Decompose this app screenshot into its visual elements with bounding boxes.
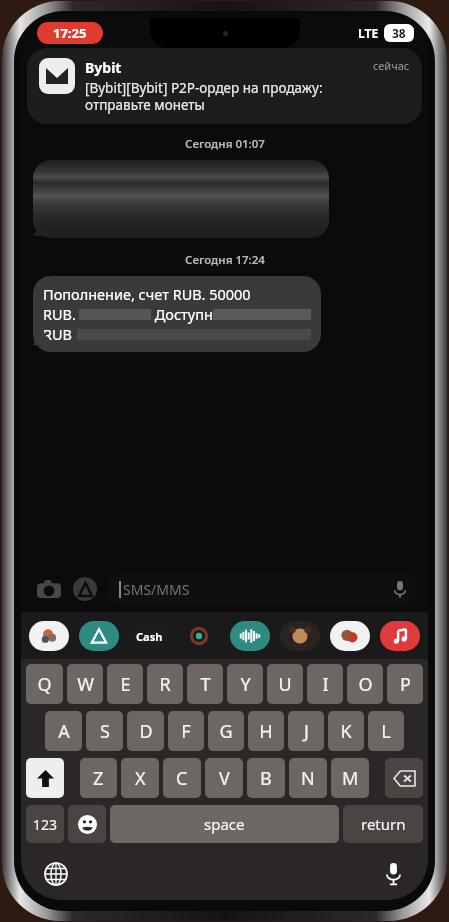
staticText: Cash	[136, 629, 163, 644]
staticText: N	[301, 766, 315, 791]
button[interactable]: App 7	[378, 619, 422, 653]
staticText: Доступн	[151, 304, 213, 324]
button[interactable]: Bybit	[27, 48, 422, 124]
staticText: R	[159, 672, 171, 697]
button[interactable]: J	[288, 711, 324, 751]
staticText: Q	[37, 672, 52, 697]
staticText: T	[200, 672, 211, 697]
button[interactable]: Backspace	[385, 758, 423, 798]
staticText: E	[120, 672, 131, 697]
button[interactable]: Y	[227, 664, 263, 704]
button[interactable]: O	[347, 664, 383, 704]
button[interactable]: A	[45, 711, 82, 751]
button[interactable]: U	[267, 664, 303, 704]
button[interactable]: App 3	[177, 619, 221, 653]
button[interactable]: R	[147, 664, 183, 704]
button[interactable]: Q	[26, 664, 63, 704]
staticText: Y	[240, 672, 251, 697]
staticText: X	[135, 766, 146, 791]
button[interactable]: T	[187, 664, 223, 704]
staticText: 123	[33, 815, 58, 834]
button[interactable]: S	[86, 711, 123, 751]
staticText: O	[358, 672, 373, 697]
staticText: return	[361, 814, 406, 834]
staticText: M	[342, 766, 359, 791]
button[interactable]: H	[248, 711, 284, 751]
button[interactable]: D	[127, 711, 164, 751]
button[interactable]: Пополнение, счет RUB. 50000	[33, 276, 321, 352]
button[interactable]: return	[343, 805, 423, 843]
button[interactable]: Shift	[26, 758, 64, 798]
staticText: Z	[93, 766, 104, 791]
button[interactable]: K	[328, 711, 364, 751]
staticText: LTE	[358, 25, 379, 41]
staticText: S	[100, 719, 110, 744]
button[interactable]	[33, 160, 329, 238]
button[interactable]: I	[307, 664, 343, 704]
staticText: Сегодня 17:24	[185, 252, 265, 268]
button[interactable]: App 1	[77, 619, 121, 653]
staticText: J	[304, 719, 309, 744]
button[interactable]: App 2	[127, 619, 171, 653]
staticText: 38	[392, 25, 406, 41]
staticText: I	[322, 672, 329, 697]
staticText: B	[260, 766, 272, 791]
staticText: A	[58, 719, 70, 744]
button[interactable]: W	[67, 664, 103, 704]
button[interactable]: Camera	[31, 571, 67, 607]
staticText: H	[259, 719, 273, 744]
button[interactable]: F	[168, 711, 204, 751]
button[interactable]: X	[121, 758, 159, 798]
staticText: C	[176, 766, 188, 791]
staticText: RUB.	[43, 304, 76, 324]
button[interactable]: App Store apps	[67, 571, 103, 607]
button[interactable]: N	[289, 758, 327, 798]
button[interactable]: Emoji	[68, 805, 106, 843]
button[interactable]: B	[247, 758, 285, 798]
button[interactable]: E	[107, 664, 143, 704]
staticText: L	[381, 719, 391, 744]
staticText: K	[340, 719, 352, 744]
button[interactable]: G	[208, 711, 244, 751]
button[interactable]: SMS/MMS	[107, 572, 418, 606]
button[interactable]: App 0	[27, 619, 71, 653]
button[interactable]: space	[110, 805, 339, 843]
button[interactable]: App 4	[228, 619, 272, 653]
button[interactable]: C	[163, 758, 201, 798]
staticText: D	[139, 719, 153, 744]
staticText: G	[219, 719, 233, 744]
button[interactable]: Z	[80, 758, 117, 798]
button[interactable]: V	[205, 758, 243, 798]
staticText: Bybit	[85, 58, 122, 77]
button[interactable]: Dictation	[376, 857, 410, 891]
staticText: P	[400, 672, 411, 697]
button[interactable]: 123	[26, 805, 64, 843]
button[interactable]: App 5	[278, 619, 322, 653]
staticText: W	[77, 672, 94, 697]
button[interactable]: App 6	[328, 619, 372, 653]
button[interactable]: M	[331, 758, 369, 798]
button[interactable]: P	[387, 664, 423, 704]
staticText: U	[278, 672, 292, 697]
staticText: сейчас	[373, 58, 410, 73]
staticText: Пополнение, счет RUB. 50000	[43, 284, 251, 304]
staticText: RUB	[43, 324, 73, 344]
staticText: V	[219, 766, 230, 791]
button[interactable]: L	[368, 711, 404, 751]
staticText: 17:25	[53, 24, 87, 42]
button[interactable]: Change keyboard language	[39, 857, 73, 891]
staticText: Сегодня 01:07	[185, 136, 265, 152]
staticText: F	[181, 719, 191, 744]
staticText: SMS/MMS	[123, 580, 190, 599]
staticText: space	[204, 814, 245, 834]
staticText: [Bybit][Bybit] P2P-ордер на продажу: отп…	[85, 79, 373, 114]
